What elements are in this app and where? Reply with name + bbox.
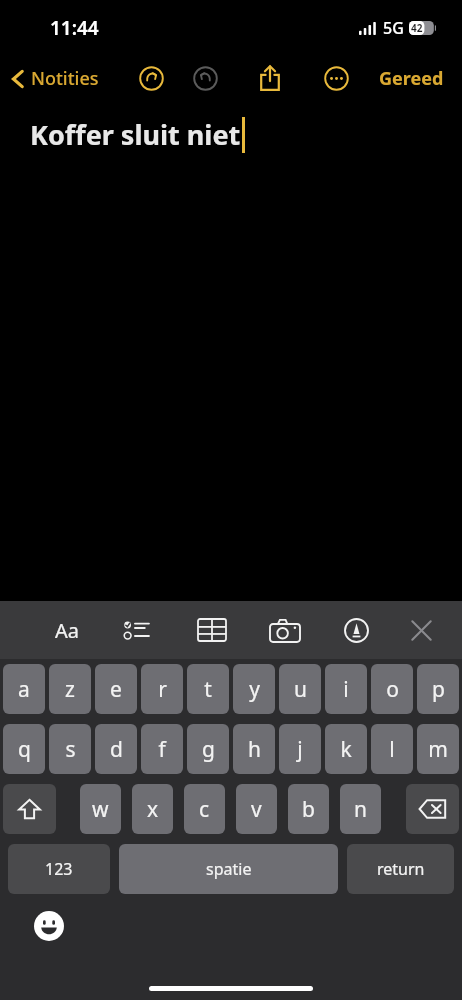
button[interactable]: j bbox=[279, 724, 321, 774]
staticText: j bbox=[297, 735, 303, 764]
button[interactable]: Backspace bbox=[406, 784, 459, 834]
button[interactable]: Camera bbox=[263, 608, 307, 652]
button[interactable]: k bbox=[325, 724, 367, 774]
staticText: e bbox=[110, 675, 122, 704]
button[interactable]: e bbox=[95, 664, 137, 714]
staticText: o bbox=[386, 675, 399, 704]
staticText: a bbox=[18, 675, 30, 704]
staticText: v bbox=[251, 795, 262, 824]
staticText: b bbox=[302, 795, 315, 824]
staticText: return bbox=[377, 858, 425, 880]
staticText: i bbox=[343, 675, 349, 704]
staticText: c bbox=[199, 795, 210, 824]
staticText: 123 bbox=[45, 858, 73, 880]
staticText: g bbox=[202, 735, 215, 764]
staticText: spatie bbox=[206, 858, 252, 880]
button[interactable]: return bbox=[347, 844, 454, 894]
staticText: 11:44 bbox=[50, 15, 99, 41]
button[interactable]: y bbox=[233, 664, 275, 714]
button[interactable]: Close keyboard bbox=[399, 608, 443, 652]
button[interactable]: Shift bbox=[3, 784, 56, 834]
button[interactable]: a bbox=[3, 664, 45, 714]
button[interactable]: Redo bbox=[184, 57, 226, 99]
staticText: m bbox=[428, 735, 448, 764]
button[interactable]: c bbox=[184, 784, 225, 834]
staticText: u bbox=[294, 675, 307, 704]
button[interactable]: Emoji bbox=[33, 910, 65, 942]
button[interactable]: i bbox=[325, 664, 367, 714]
button[interactable]: d bbox=[95, 724, 137, 774]
staticText: 5G bbox=[383, 17, 404, 39]
button[interactable]: Gereed bbox=[375, 60, 448, 97]
staticText: s bbox=[65, 735, 76, 764]
button[interactable]: Notities bbox=[8, 60, 103, 97]
button[interactable]: Undo bbox=[130, 57, 172, 99]
staticText: Koffer sluit niet bbox=[30, 116, 241, 153]
button[interactable]: o bbox=[371, 664, 413, 714]
staticText: h bbox=[248, 735, 261, 764]
staticText: d bbox=[110, 735, 123, 764]
button[interactable]: 123 bbox=[8, 844, 110, 894]
staticText: q bbox=[18, 735, 31, 764]
staticText: r bbox=[158, 675, 167, 704]
button[interactable]: t bbox=[187, 664, 229, 714]
button[interactable]: More options bbox=[315, 57, 357, 99]
button[interactable]: p bbox=[417, 664, 459, 714]
button[interactable]: m bbox=[417, 724, 459, 774]
button[interactable]: s bbox=[49, 724, 91, 774]
button[interactable]: Table bbox=[190, 608, 234, 652]
staticText: n bbox=[354, 795, 367, 824]
button[interactable]: n bbox=[340, 784, 381, 834]
staticText: p bbox=[432, 675, 445, 704]
staticText: z bbox=[65, 675, 75, 704]
button[interactable]: Text format bbox=[45, 608, 89, 652]
button[interactable]: w bbox=[80, 784, 121, 834]
button[interactable]: f bbox=[141, 724, 183, 774]
staticText: k bbox=[340, 735, 352, 764]
staticText: 42 bbox=[411, 21, 423, 35]
button[interactable]: u bbox=[279, 664, 321, 714]
button[interactable]: h bbox=[233, 724, 275, 774]
staticText: Gereed bbox=[379, 66, 444, 91]
staticText: f bbox=[158, 735, 166, 764]
staticText: w bbox=[92, 795, 109, 824]
button[interactable]: l bbox=[371, 724, 413, 774]
staticText: y bbox=[249, 675, 260, 704]
staticText: Notities bbox=[31, 66, 99, 91]
button[interactable]: q bbox=[3, 724, 45, 774]
staticText: x bbox=[147, 795, 159, 824]
staticText: t bbox=[204, 675, 212, 704]
button[interactable]: z bbox=[49, 664, 91, 714]
button[interactable]: Markup bbox=[334, 608, 378, 652]
button[interactable]: x bbox=[132, 784, 173, 834]
staticText: l bbox=[389, 735, 395, 764]
button[interactable]: b bbox=[288, 784, 329, 834]
button[interactable]: r bbox=[141, 664, 183, 714]
staticText: Aa bbox=[55, 617, 79, 644]
button[interactable]: spatie bbox=[119, 844, 338, 894]
button[interactable]: Share bbox=[249, 57, 291, 99]
button[interactable]: Checklist bbox=[115, 608, 159, 652]
button[interactable]: v bbox=[236, 784, 277, 834]
button[interactable]: g bbox=[187, 724, 229, 774]
